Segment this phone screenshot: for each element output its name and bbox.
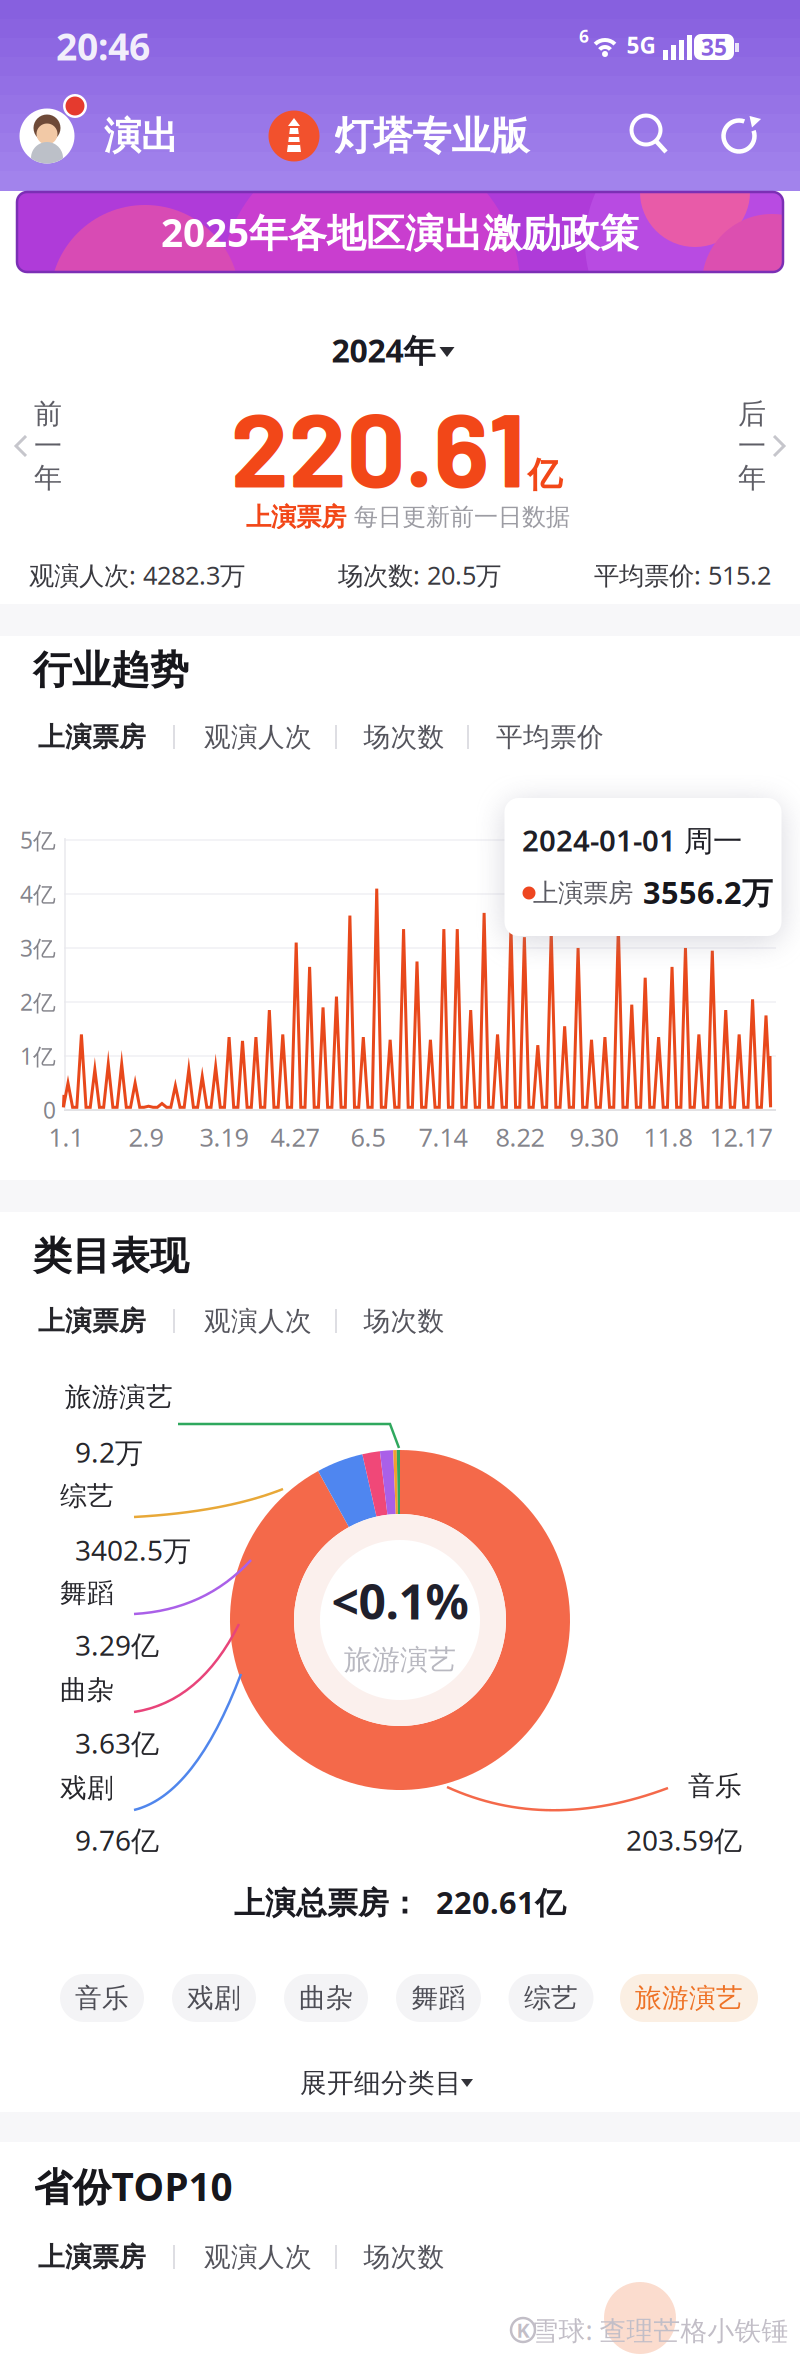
staticText: 平均票价	[496, 721, 604, 753]
staticText: 3.63亿	[75, 1724, 159, 1762]
staticText: 省份TOP10	[33, 2160, 232, 2212]
staticText: 上演票房	[38, 721, 146, 753]
staticText: 年	[34, 461, 62, 495]
staticText: 平均票价: 515.2	[594, 558, 771, 592]
staticText: 舞蹈	[411, 1982, 465, 2014]
staticText: 展开细分类目	[300, 2067, 462, 2099]
button[interactable]: 曲杂	[284, 1974, 368, 2022]
button[interactable]: 上演票房	[22, 2235, 162, 2279]
staticText: 2025年各地区演出激励政策	[161, 206, 639, 258]
button[interactable]: 2024年	[321, 324, 466, 376]
button[interactable]: 上演票房	[22, 715, 162, 759]
staticText: 3.19	[199, 1120, 248, 1154]
button[interactable]: 观演人次	[188, 1299, 328, 1343]
staticText: 旅游演艺	[344, 1643, 456, 1677]
staticText: 旅游演艺	[635, 1982, 743, 2014]
staticText: 音乐	[688, 1770, 742, 1802]
staticText: 类目表现	[33, 1232, 189, 1280]
staticText: 上演票房	[38, 1305, 146, 1337]
button[interactable]: 音乐	[60, 1974, 144, 2022]
button[interactable]: 旅游演艺	[620, 1974, 758, 2022]
button[interactable]: 舞蹈	[396, 1974, 481, 2022]
staticText: <0.1%	[331, 1569, 468, 1633]
staticText: 1.1	[48, 1120, 83, 1154]
staticText: 9.76亿	[75, 1821, 159, 1859]
staticText: 上演票房	[533, 877, 633, 908]
staticText: 2.9	[128, 1120, 163, 1154]
staticText: 3556.2万	[643, 872, 773, 912]
staticText: 观演人次	[204, 2241, 312, 2273]
staticText: K	[516, 2317, 529, 2343]
staticText: 上演票房	[246, 501, 346, 532]
staticText: 220.61	[230, 384, 525, 508]
staticText: 后	[738, 397, 766, 431]
staticText: 场次数: 20.5万	[338, 558, 501, 592]
staticText: 曲杂	[299, 1982, 353, 2014]
button[interactable]	[19, 108, 74, 163]
staticText: 综艺	[60, 1480, 114, 1512]
button[interactable]: 观演人次	[188, 715, 328, 759]
staticText: 综艺	[524, 1982, 578, 2014]
staticText: 6	[579, 24, 589, 47]
staticText: 8.22	[495, 1120, 544, 1154]
button[interactable]: 综艺	[508, 1974, 593, 2022]
staticText: 4.27	[270, 1120, 319, 1154]
staticText: 2亿	[20, 987, 56, 1017]
staticText: 场次数	[363, 2241, 444, 2273]
staticText: 11.8	[643, 1120, 692, 1154]
staticText: 旅游演艺	[65, 1381, 173, 1413]
button[interactable]: 观演人次	[188, 2235, 328, 2279]
staticText: 2024-01-01 周一	[522, 820, 742, 859]
staticText: 上演票房	[38, 2241, 146, 2273]
staticText: 观演人次: 4282.3万	[29, 558, 245, 592]
staticText: 1亿	[20, 1041, 56, 1071]
button[interactable]: 2025年各地区演出激励政策	[17, 192, 783, 272]
staticText: 戏剧	[60, 1772, 114, 1804]
staticText: 203.59亿	[626, 1821, 742, 1859]
staticText: 3.29亿	[75, 1626, 159, 1664]
staticText: 4亿	[20, 879, 56, 909]
staticText: 35	[701, 32, 727, 62]
staticText: 20:46	[56, 21, 150, 71]
staticText: 9.2万	[75, 1433, 143, 1471]
staticText: 3亿	[20, 933, 56, 963]
staticText: 9.30	[569, 1120, 618, 1154]
button[interactable]	[711, 108, 767, 164]
staticText: 一	[738, 429, 766, 463]
staticText: 雪球: 查理芒格小铁锤	[531, 2312, 788, 2348]
staticText: 观演人次	[204, 1305, 312, 1337]
staticText: 5亿	[20, 825, 56, 855]
button[interactable]: 前	[0, 404, 70, 490]
staticText: 每日更新前一日数据	[354, 502, 570, 532]
staticText: 灯塔专业版	[334, 112, 529, 160]
button[interactable]: 平均票价	[480, 715, 620, 759]
staticText: 戏剧	[187, 1982, 241, 2014]
staticText: 12.17	[709, 1120, 772, 1154]
staticText: 曲杂	[60, 1674, 114, 1706]
staticText: 场次数	[363, 721, 444, 753]
button[interactable]: 场次数	[344, 1299, 464, 1343]
button[interactable]: 后	[730, 404, 800, 490]
button[interactable]	[620, 106, 676, 162]
staticText: 亿	[527, 454, 562, 496]
button[interactable]: 戏剧	[172, 1974, 256, 2022]
staticText: 舞蹈	[60, 1577, 114, 1609]
staticText: 行业趋势	[33, 646, 189, 694]
staticText: 7.14	[418, 1120, 467, 1154]
staticText: 前	[34, 397, 62, 431]
staticText: 观演人次	[204, 721, 312, 753]
staticText: 0	[43, 1095, 56, 1125]
button[interactable]: 场次数	[344, 2235, 464, 2279]
staticText: 年	[738, 461, 766, 495]
staticText: 音乐	[75, 1982, 129, 2014]
staticText: 上演总票房： 220.61亿	[234, 1882, 566, 1922]
staticText: 2024年	[331, 329, 435, 371]
staticText: 演出	[104, 113, 178, 159]
staticText: 5G	[626, 30, 655, 60]
staticText: 6.5	[350, 1120, 385, 1154]
staticText: 场次数	[363, 1305, 444, 1337]
staticText: 一	[34, 429, 62, 463]
button[interactable]: 场次数	[344, 715, 464, 759]
button[interactable]: 上演票房	[22, 1299, 162, 1343]
button[interactable]: 展开细分类目	[315, 2061, 485, 2105]
